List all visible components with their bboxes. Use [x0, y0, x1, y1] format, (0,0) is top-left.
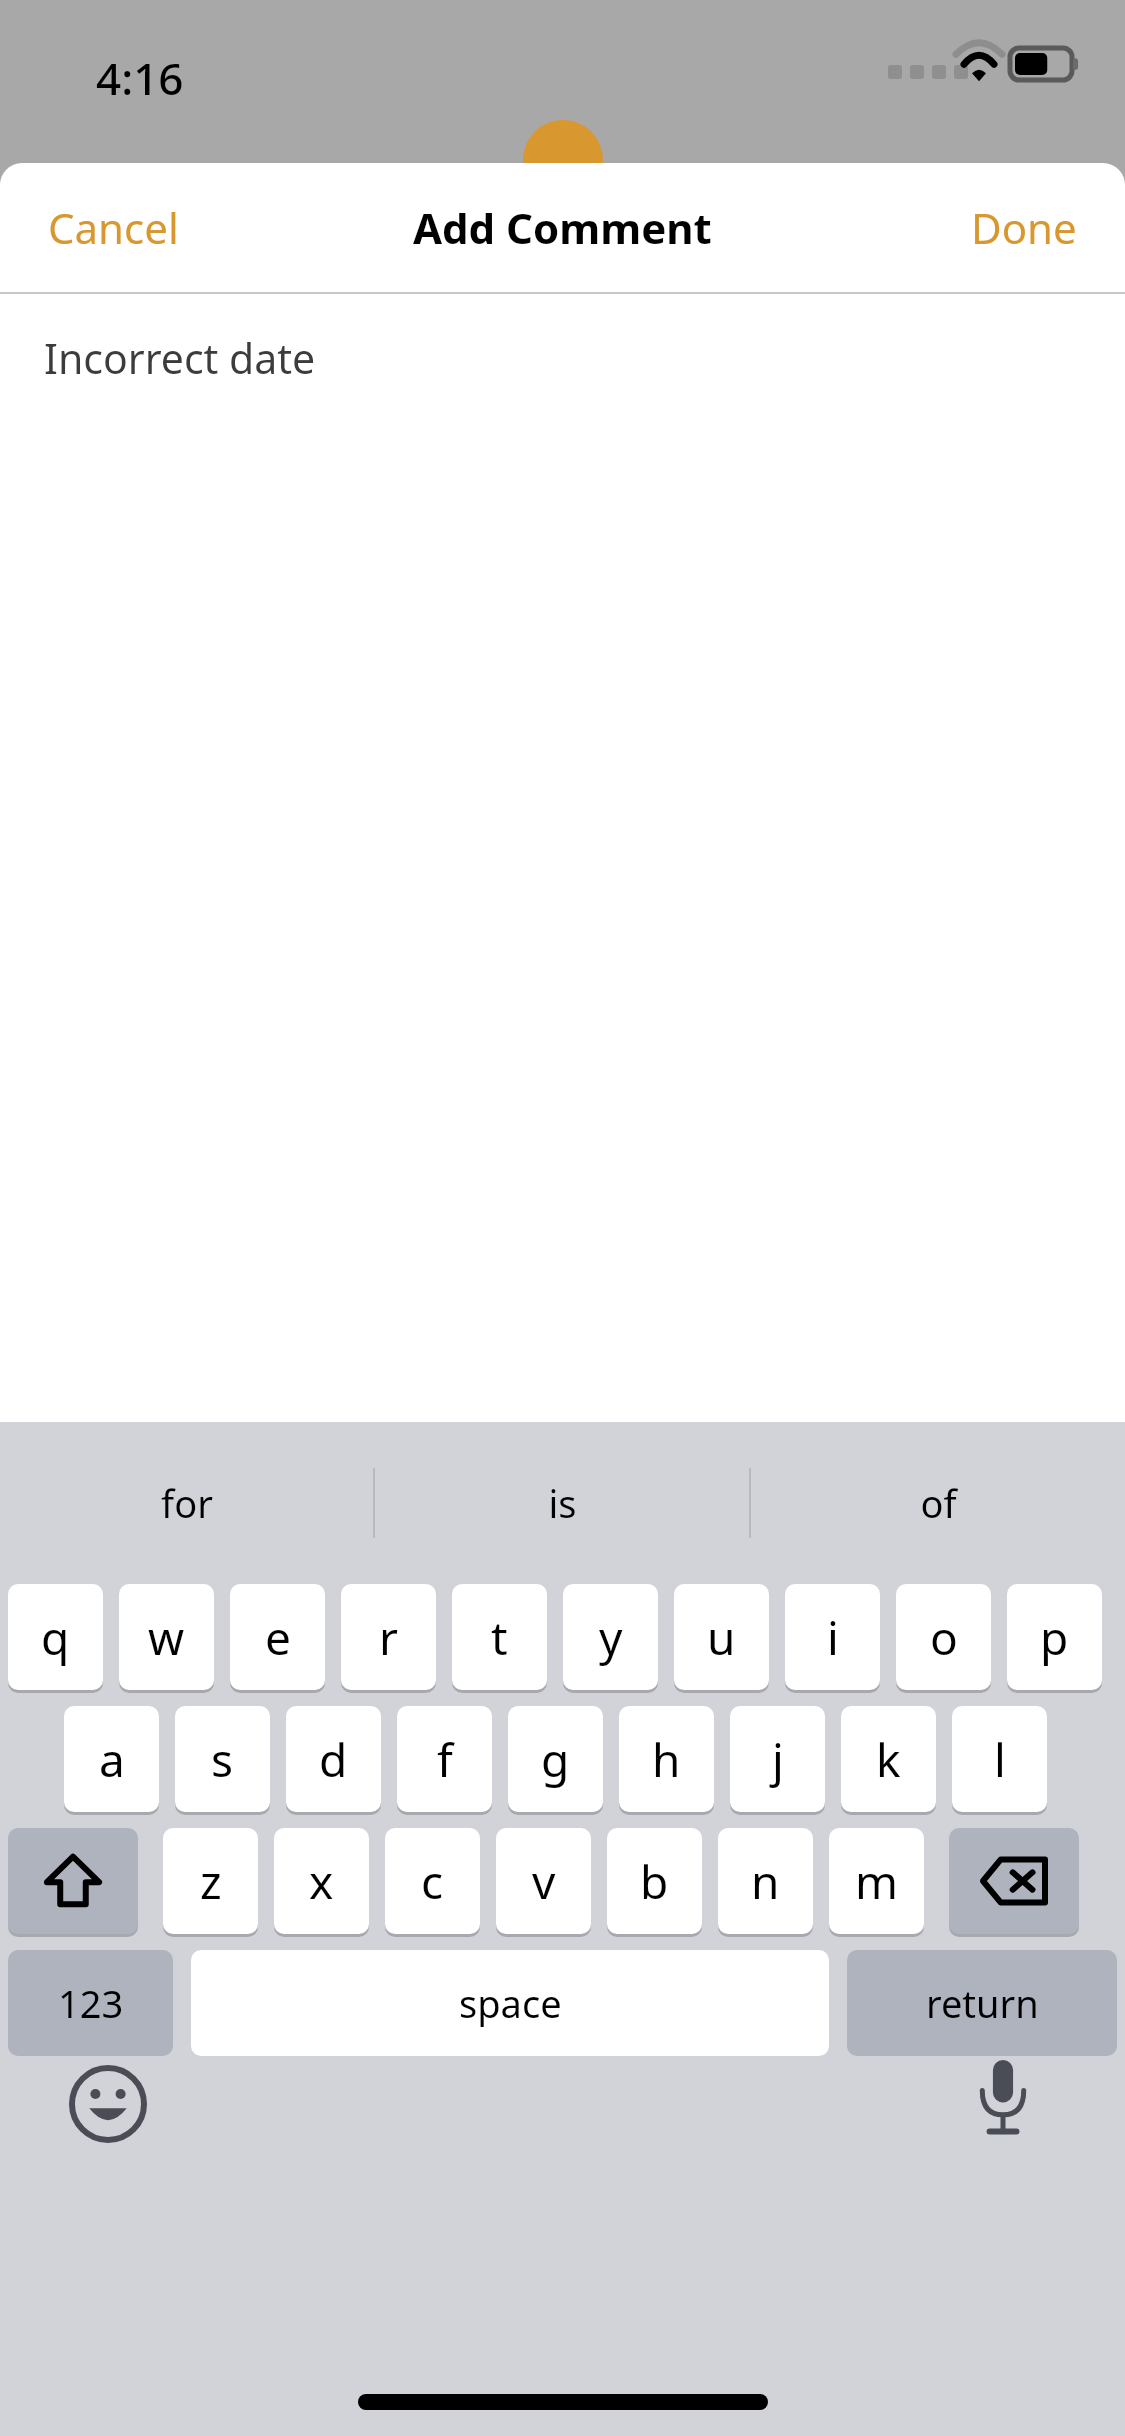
staticText: p — [1040, 1606, 1069, 1669]
button[interactable]: o — [896, 1584, 991, 1690]
button[interactable]: Emoji — [68, 2064, 148, 2144]
button[interactable]: r — [341, 1584, 436, 1690]
button[interactable]: u — [674, 1584, 769, 1690]
button[interactable]: y — [563, 1584, 658, 1690]
button[interactable]: is — [375, 1422, 749, 1584]
button[interactable]: Backspace — [949, 1828, 1079, 1934]
button[interactable]: s — [175, 1706, 270, 1812]
button[interactable]: return — [847, 1950, 1117, 2056]
button[interactable]: c — [385, 1828, 480, 1934]
staticText: c — [421, 1850, 444, 1913]
staticText: q — [41, 1606, 70, 1669]
staticText: d — [319, 1728, 348, 1791]
staticText: l — [994, 1728, 1006, 1791]
staticText: z — [200, 1850, 222, 1913]
staticText: for — [161, 1477, 213, 1529]
button[interactable]: h — [619, 1706, 714, 1812]
staticText: a — [99, 1728, 125, 1791]
button[interactable]: g — [508, 1706, 603, 1812]
button[interactable]: f — [397, 1706, 492, 1812]
button[interactable]: d — [286, 1706, 381, 1812]
staticText: Incorrect date — [44, 330, 316, 386]
button[interactable]: q — [8, 1584, 103, 1690]
button[interactable]: n — [718, 1828, 813, 1934]
button[interactable]: m — [829, 1828, 924, 1934]
button[interactable]: p — [1007, 1584, 1102, 1690]
staticText: of — [920, 1477, 957, 1529]
button[interactable]: of — [751, 1422, 1125, 1584]
button[interactable]: w — [119, 1584, 214, 1690]
button[interactable]: for — [0, 1422, 373, 1584]
staticText: 123 — [58, 1977, 124, 2029]
staticText: Cancel — [48, 199, 179, 256]
staticText: Done — [971, 199, 1077, 256]
button[interactable]: b — [607, 1828, 702, 1934]
staticText: n — [751, 1850, 780, 1913]
button[interactable]: a — [64, 1706, 159, 1812]
staticText: m — [855, 1850, 899, 1913]
button[interactable]: 123 — [8, 1950, 173, 2056]
staticText: j — [772, 1728, 784, 1791]
staticText: g — [541, 1728, 570, 1791]
staticText: r — [379, 1606, 398, 1669]
button[interactable]: x — [274, 1828, 369, 1934]
button[interactable]: Shift — [8, 1828, 138, 1934]
staticText: k — [876, 1728, 901, 1791]
staticText: o — [930, 1606, 958, 1669]
button[interactable]: j — [730, 1706, 825, 1812]
staticText: Add Comment — [413, 199, 712, 256]
button[interactable]: space — [191, 1950, 829, 2056]
staticText: space — [459, 1977, 562, 2029]
staticText: 4:16 — [96, 48, 184, 108]
staticText: w — [148, 1606, 185, 1669]
button[interactable]: Done — [945, 183, 1103, 272]
staticText: u — [707, 1606, 736, 1669]
staticText: y — [599, 1606, 623, 1669]
staticText: is — [548, 1477, 577, 1529]
button[interactable]: i — [785, 1584, 880, 1690]
button[interactable]: k — [841, 1706, 936, 1812]
staticText: e — [265, 1606, 291, 1669]
button[interactable]: e — [230, 1584, 325, 1690]
staticText: return — [926, 1977, 1039, 2029]
staticText: t — [491, 1606, 508, 1669]
button[interactable]: v — [496, 1828, 591, 1934]
staticText: h — [652, 1728, 681, 1791]
staticText: v — [532, 1850, 556, 1913]
staticText: i — [827, 1606, 839, 1669]
button[interactable]: Cancel — [22, 183, 205, 272]
staticText: b — [640, 1850, 669, 1913]
button[interactable]: l — [952, 1706, 1047, 1812]
staticText: f — [437, 1728, 453, 1791]
button[interactable]: z — [163, 1828, 258, 1934]
staticText: x — [309, 1850, 334, 1913]
staticText: s — [211, 1728, 234, 1791]
button[interactable]: Dictation — [975, 2060, 1055, 2140]
button[interactable]: t — [452, 1584, 547, 1690]
